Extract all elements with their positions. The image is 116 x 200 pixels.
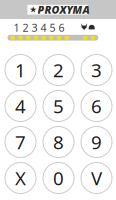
button[interactable]: 2 <box>43 54 74 85</box>
staticText: 4 <box>15 94 26 118</box>
staticText: 2 <box>53 58 64 82</box>
button[interactable]: 1 <box>5 54 36 85</box>
staticText: X <box>15 166 26 190</box>
button[interactable]: 0 <box>43 162 74 193</box>
button[interactable]: 6 <box>81 90 112 121</box>
staticText: 8 <box>53 130 64 154</box>
button[interactable]: 3 <box>81 54 112 85</box>
button[interactable]: 9 <box>81 126 112 157</box>
staticText: V <box>91 166 102 190</box>
staticText: 0 <box>53 166 64 190</box>
staticText: PROXYMA <box>37 3 89 17</box>
button[interactable]: V <box>81 162 112 193</box>
staticText: 3 <box>91 58 102 82</box>
button[interactable]: 7 <box>5 126 36 157</box>
staticText: 1 <box>15 58 26 82</box>
button[interactable]: 8 <box>43 126 74 157</box>
button[interactable]: 5 <box>43 90 74 121</box>
button[interactable]: X <box>5 162 36 193</box>
staticText: 5 <box>53 94 64 118</box>
staticText: 7 <box>15 130 26 154</box>
staticText: 6 <box>91 94 102 118</box>
button[interactable]: 4 <box>5 90 36 121</box>
staticText: 1 2 3 4 5 6 <box>13 20 64 35</box>
staticText: 9 <box>91 130 102 154</box>
